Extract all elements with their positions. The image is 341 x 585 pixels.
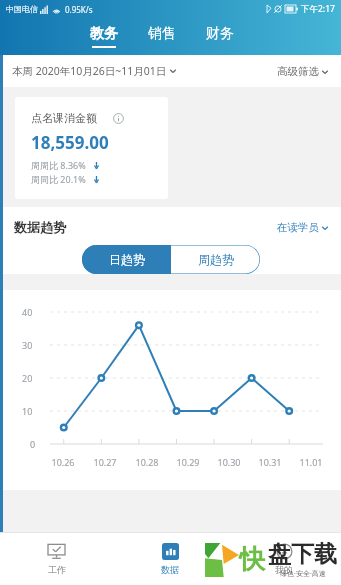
button[interactable]: 本周 2020年10月26日~11月01日: [12, 64, 177, 78]
staticText: 下午2:17: [301, 3, 335, 15]
staticText: 中国电信: [6, 4, 38, 14]
staticText: 40: [22, 306, 33, 318]
staticText: 20: [22, 372, 33, 384]
staticText: 销售: [148, 25, 176, 43]
button[interactable]: 财务: [204, 23, 236, 50]
staticText: 在读学员: [277, 221, 319, 234]
staticText: 快: [239, 543, 265, 576]
staticText: 周趋势: [198, 252, 234, 267]
staticText: 高级筛选: [277, 65, 319, 78]
staticText: 11.01: [299, 456, 323, 468]
button[interactable]: 销售: [146, 23, 178, 50]
button[interactable]: 数据: [113, 533, 227, 585]
staticText: 点名课消金额: [31, 111, 97, 125]
button[interactable]: 日趋势: [82, 245, 171, 274]
staticText: 0.95K/s: [65, 4, 93, 15]
staticText: 绿色·安全·高速: [280, 569, 326, 579]
staticText: 我的: [275, 564, 293, 575]
staticText: 10: [22, 405, 33, 417]
staticText: 财务: [206, 25, 234, 43]
staticText: 10.28: [135, 456, 159, 468]
staticText: 周周比 8.36%: [31, 159, 86, 171]
staticText: 10.31: [258, 456, 282, 468]
button[interactable]: 点名课消金额: [15, 97, 168, 199]
staticText: 工作: [48, 564, 66, 575]
button[interactable]: 高级筛选: [277, 65, 329, 78]
staticText: 18,559.00: [31, 131, 109, 154]
staticText: 10.29: [176, 456, 200, 468]
staticText: 数据: [161, 564, 179, 575]
button[interactable]: 我的: [227, 533, 341, 585]
staticText: 10.26: [51, 456, 75, 468]
button[interactable]: 周趋势: [171, 245, 260, 274]
button[interactable]: 教务: [88, 23, 120, 50]
button[interactable]: 在读学员: [277, 221, 329, 234]
staticText: 周同比 20.1%: [31, 173, 86, 185]
staticText: 数据趋势: [14, 219, 66, 235]
staticText: 10.27: [93, 456, 117, 468]
staticText: 日趋势: [109, 252, 145, 267]
staticText: 0: [30, 438, 36, 450]
staticText: 盘下载: [268, 540, 337, 569]
staticText: 教务: [90, 25, 118, 43]
staticText: 30: [22, 339, 33, 351]
button[interactable]: 工作: [0, 533, 113, 585]
other: 信息: [113, 113, 124, 124]
staticText: 10.30: [217, 456, 241, 468]
staticText: 本周 2020年10月26日~11月01日: [12, 64, 167, 78]
